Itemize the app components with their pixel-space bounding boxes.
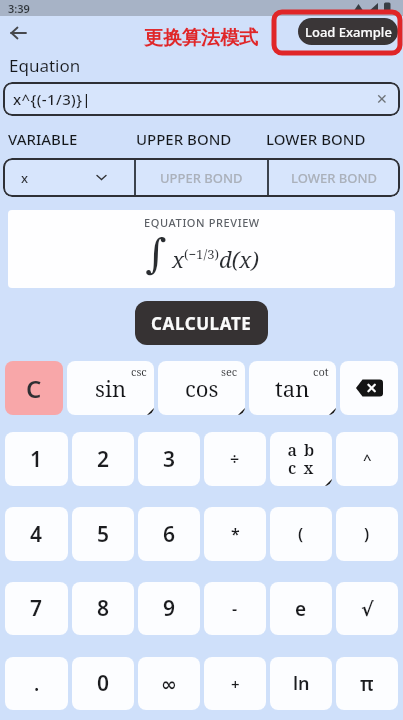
staticText: * [231, 523, 240, 545]
staticText: 3:39 [8, 1, 30, 16]
staticText: csc [131, 364, 147, 379]
staticText: Load Example [305, 23, 392, 41]
staticText: 9 [163, 594, 176, 623]
button[interactable]: e [270, 582, 332, 635]
button[interactable]: 6 [138, 507, 200, 561]
button[interactable]: 7 [5, 582, 68, 635]
staticText: ∫ x(−1/3)d(x) [145, 230, 259, 278]
staticText: 7 [30, 594, 43, 623]
staticText: cos [185, 373, 219, 403]
button[interactable]: cos [158, 361, 245, 415]
staticText: 1 [30, 445, 43, 474]
button[interactable]: 1 [5, 432, 68, 486]
button[interactable]: x [3, 158, 134, 197]
staticText: LOWER BOND [291, 169, 378, 187]
button[interactable]: . [5, 657, 68, 710]
button[interactable]: 8 [72, 582, 134, 635]
button[interactable]: π [336, 657, 398, 710]
button[interactable]: ÷ [204, 432, 266, 486]
staticText: VARIABLE [8, 129, 78, 149]
button[interactable] [2, 18, 36, 48]
button[interactable]: Load Example [298, 18, 398, 45]
staticText: 0 [97, 669, 110, 698]
button[interactable]: x^{(-1/3)}| [3, 82, 400, 116]
staticText: 8 [97, 594, 110, 623]
button[interactable]: 0 [72, 657, 134, 710]
button[interactable]: √ [336, 582, 398, 635]
staticText: ) [364, 523, 370, 545]
button[interactable]: ( [270, 507, 332, 561]
button[interactable]: ln [270, 657, 332, 710]
staticText: ÷ [230, 448, 240, 470]
button[interactable]: 4 [5, 507, 68, 561]
staticText: UPPER BOND [136, 129, 232, 149]
staticText: 3 [163, 445, 176, 474]
button[interactable]: sin [67, 361, 154, 415]
staticText: x^{(-1/3)}| [13, 89, 92, 109]
staticText: a b c x [287, 439, 316, 479]
staticText: + [231, 674, 240, 694]
staticText: sin [95, 373, 127, 403]
staticText: ∞ [161, 673, 177, 695]
staticText: cot [313, 364, 329, 379]
staticText: ✕ [376, 91, 388, 107]
button[interactable]: * [204, 507, 266, 561]
staticText: . [34, 671, 40, 697]
staticText: 2 [97, 445, 110, 474]
button[interactable]: ^ [336, 432, 398, 486]
staticText: sec [221, 364, 238, 379]
button[interactable]: C [5, 361, 63, 415]
button[interactable]: tan [249, 361, 336, 415]
staticText: √ [361, 598, 374, 620]
staticText: 4 [30, 520, 43, 549]
staticText: ln [293, 671, 310, 696]
staticText: ^ [363, 449, 372, 469]
staticText: x [21, 169, 29, 187]
staticText: ( [298, 523, 304, 545]
staticText: - [232, 598, 238, 620]
button[interactable]: UPPER BOND [136, 158, 267, 197]
button[interactable]: ∞ [138, 657, 200, 710]
staticText: 5 [97, 520, 110, 549]
button[interactable]: 3 [138, 432, 200, 486]
button[interactable]: 9 [138, 582, 200, 635]
staticText: CALCULATE [151, 312, 252, 335]
staticText: e [295, 596, 307, 622]
staticText: LOWER BOND [266, 129, 366, 149]
staticText: EQUATION PREVIEW [144, 215, 260, 230]
button[interactable]: LOWER BOND [269, 158, 400, 197]
staticText: C [26, 372, 42, 405]
button[interactable]: a b c x [270, 432, 332, 486]
button[interactable]: 5 [72, 507, 134, 561]
staticText: Equation [9, 54, 81, 77]
button[interactable]: + [204, 657, 266, 710]
button[interactable]: - [204, 582, 266, 635]
staticText: π [360, 671, 374, 697]
staticText: UPPER BOND [160, 169, 243, 187]
button[interactable] [340, 361, 398, 415]
staticText: tan [275, 373, 310, 403]
button[interactable]: 2 [72, 432, 134, 486]
staticText: 6 [163, 520, 176, 549]
button[interactable]: ) [336, 507, 398, 561]
button[interactable]: CALCULATE [135, 301, 268, 345]
staticText: 更换算法模式 [144, 26, 258, 50]
